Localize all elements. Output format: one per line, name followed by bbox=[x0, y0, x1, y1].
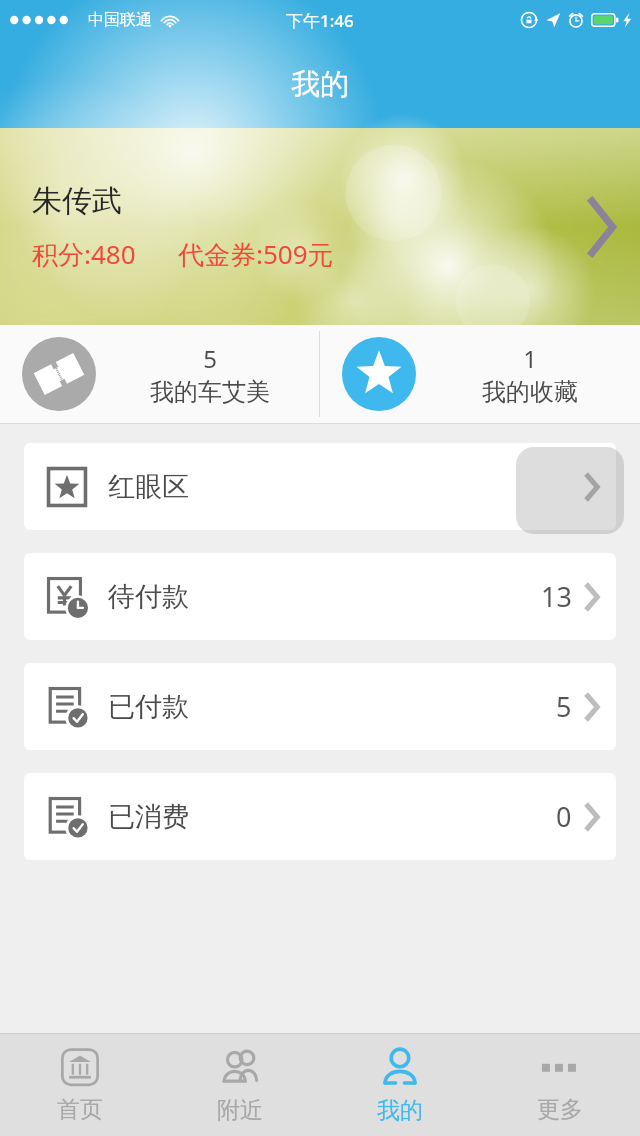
staticText: 我的 bbox=[291, 66, 349, 103]
staticText: 朱传武 bbox=[32, 182, 122, 220]
staticText: 红眼区 bbox=[108, 470, 189, 504]
staticText: 0 bbox=[556, 798, 572, 835]
button[interactable]: 首页 bbox=[0, 1034, 160, 1136]
button[interactable]: 5 bbox=[0, 325, 319, 423]
staticText: 待付款 bbox=[108, 580, 189, 614]
staticText: 中国联通 bbox=[88, 10, 152, 30]
staticText: 已消费 bbox=[108, 800, 189, 834]
button[interactable]: 朱传武 bbox=[0, 128, 640, 325]
staticText: 5 bbox=[203, 342, 217, 375]
staticText: 附近 bbox=[217, 1096, 263, 1125]
staticText: 已付款 bbox=[108, 690, 189, 724]
staticText: 更多 bbox=[537, 1095, 583, 1124]
staticText: 1 bbox=[523, 342, 537, 375]
staticText: 积分:480 bbox=[32, 236, 136, 272]
button[interactable]: 已付款 bbox=[24, 663, 616, 750]
staticText: 13 bbox=[541, 578, 572, 615]
staticText: 我的 bbox=[377, 1096, 423, 1125]
button[interactable]: 1 bbox=[320, 325, 640, 423]
staticText: 我的收藏 bbox=[482, 377, 578, 407]
button[interactable]: 附近 bbox=[160, 1034, 320, 1136]
button[interactable]: 已消费 bbox=[24, 773, 616, 860]
button[interactable]: 待付款 bbox=[24, 553, 616, 640]
staticText: 代金券:509元 bbox=[178, 236, 334, 272]
button[interactable]: 我的 bbox=[320, 1034, 480, 1136]
staticText: 首页 bbox=[57, 1095, 103, 1124]
staticText: 我的车艾美 bbox=[150, 377, 270, 407]
staticText: 下午1:46 bbox=[286, 9, 354, 32]
button[interactable]: 更多 bbox=[480, 1034, 640, 1136]
button[interactable]: 红眼区 bbox=[24, 443, 616, 530]
staticText: 5 bbox=[556, 688, 572, 725]
